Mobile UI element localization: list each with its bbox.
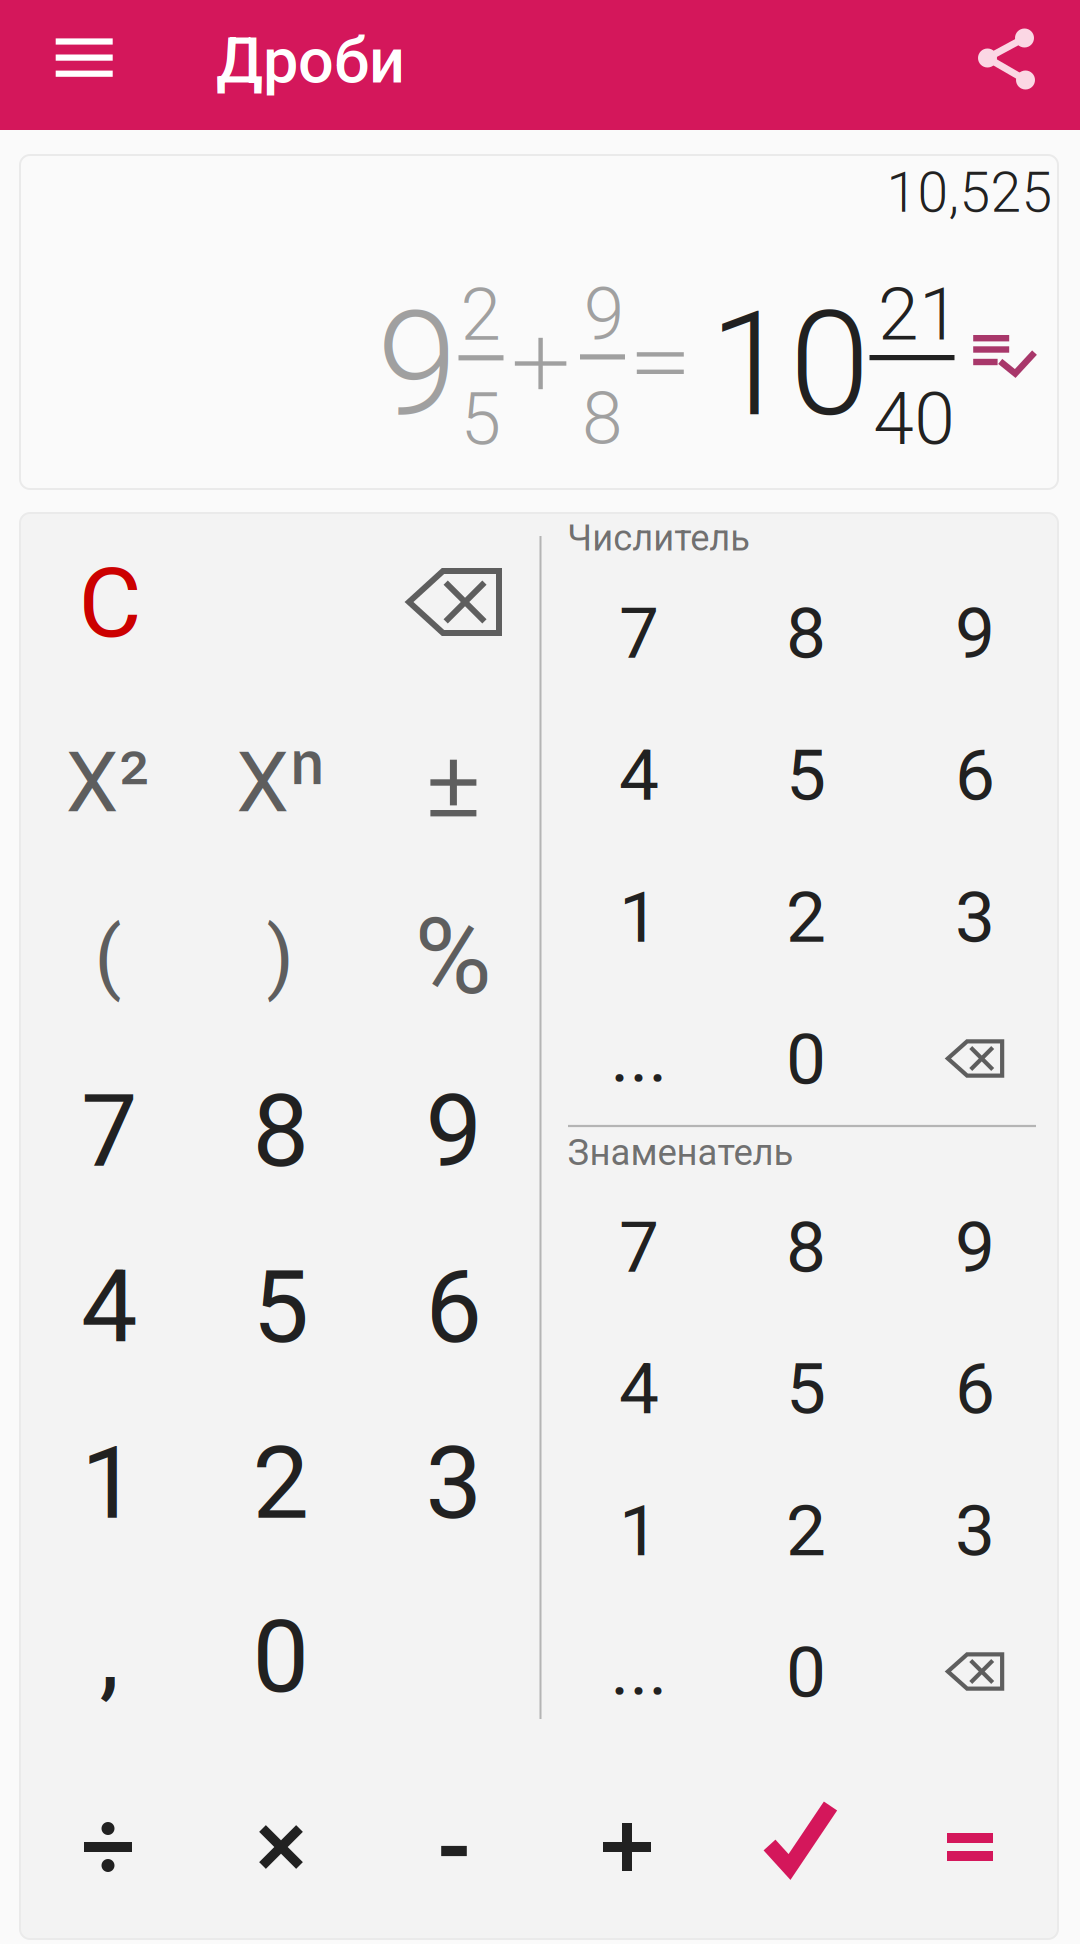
staticText: Дроби bbox=[216, 24, 405, 98]
button[interactable]: 1 bbox=[23, 1395, 196, 1571]
button[interactable]: 7 bbox=[555, 1177, 723, 1318]
staticText: 8 bbox=[786, 1206, 826, 1289]
button[interactable]: Divide bbox=[21, 1749, 194, 1944]
button[interactable]: 4 bbox=[23, 1219, 196, 1395]
staticText: 7 bbox=[619, 592, 659, 675]
button[interactable]: 6 bbox=[891, 1318, 1059, 1459]
button[interactable]: Multiply bbox=[194, 1749, 367, 1944]
button[interactable]: 0 bbox=[722, 989, 890, 1130]
button[interactable]: 4 bbox=[555, 1318, 723, 1459]
button[interactable]: 7 bbox=[23, 1043, 196, 1219]
button[interactable]: 0 bbox=[722, 1602, 890, 1743]
button[interactable]: ( bbox=[21, 869, 194, 1045]
button[interactable]: 8 bbox=[194, 1043, 367, 1219]
button[interactable]: ... bbox=[555, 986, 723, 1127]
staticText: % bbox=[414, 895, 491, 1019]
button[interactable]: ) bbox=[193, 869, 366, 1045]
staticText: 10 bbox=[709, 280, 869, 450]
staticText: 6 bbox=[955, 1347, 995, 1431]
button[interactable]: Share bbox=[954, 0, 1059, 123]
button[interactable]: 6 bbox=[367, 1219, 540, 1395]
staticText: ) bbox=[266, 911, 293, 1003]
staticText: Числитель bbox=[567, 517, 750, 559]
staticText: 0 bbox=[786, 1631, 826, 1714]
button[interactable]: 7 bbox=[555, 563, 723, 704]
button[interactable]: Backspace bbox=[891, 1601, 1059, 1742]
staticText: 6 bbox=[955, 734, 995, 817]
button[interactable]: % bbox=[366, 869, 539, 1045]
button[interactable]: 2 bbox=[722, 847, 890, 988]
button[interactable]: X² bbox=[21, 695, 194, 871]
staticText: 4 bbox=[81, 1248, 138, 1366]
button[interactable]: 1 bbox=[555, 847, 723, 988]
button[interactable]: Xⁿ bbox=[194, 695, 367, 871]
staticText: 8 bbox=[252, 1072, 309, 1190]
button[interactable]: Simplify bbox=[713, 1749, 886, 1944]
button[interactable]: 4 bbox=[555, 705, 723, 846]
button[interactable]: Minus bbox=[367, 1749, 540, 1944]
button[interactable]: 5 bbox=[722, 705, 890, 846]
button[interactable]: 3 bbox=[367, 1395, 540, 1571]
button[interactable]: 5 bbox=[194, 1219, 367, 1395]
button[interactable]: Open navigation menu bbox=[30, 12, 139, 102]
button[interactable]: 9 bbox=[891, 1177, 1059, 1318]
staticText: 1 bbox=[619, 876, 659, 959]
button[interactable]: 8 bbox=[722, 563, 890, 704]
staticText: Знаменатель bbox=[567, 1131, 793, 1174]
button[interactable]: 9 bbox=[367, 1043, 540, 1219]
button[interactable]: Backspace bbox=[367, 514, 540, 690]
staticText: C bbox=[78, 547, 141, 660]
staticText: 8 bbox=[786, 592, 826, 675]
staticText: 7 bbox=[619, 1206, 659, 1289]
button[interactable]: 1 bbox=[555, 1460, 723, 1601]
button[interactable]: 8 bbox=[722, 1177, 890, 1318]
button[interactable]: Backspace bbox=[891, 988, 1059, 1129]
staticText: 9 bbox=[377, 279, 457, 449]
button[interactable]: C bbox=[23, 515, 196, 691]
staticText: ... bbox=[610, 1628, 667, 1712]
button[interactable]: 9 bbox=[891, 563, 1059, 704]
button[interactable]: 2 bbox=[194, 1395, 367, 1571]
staticText: Xⁿ bbox=[236, 733, 325, 832]
staticText: 2 bbox=[786, 876, 826, 959]
staticText: X² bbox=[66, 733, 150, 832]
staticText: 3 bbox=[955, 1489, 995, 1573]
button[interactable]: Plus bbox=[540, 1749, 713, 1944]
button[interactable]: Equals bbox=[883, 1749, 1056, 1944]
staticText: 2 bbox=[786, 1489, 826, 1573]
button[interactable]: 6 bbox=[891, 705, 1059, 846]
button[interactable]: 3 bbox=[891, 1460, 1059, 1601]
staticText: 9 bbox=[584, 271, 625, 357]
staticText: 6 bbox=[425, 1248, 482, 1366]
staticText: 9 bbox=[955, 1206, 995, 1289]
staticText: 4 bbox=[619, 734, 659, 817]
staticText: 5 bbox=[252, 1248, 309, 1366]
staticText: 8 bbox=[582, 376, 623, 461]
staticText: 9 bbox=[425, 1072, 482, 1190]
staticText: 5 bbox=[786, 734, 826, 817]
staticText: 5 bbox=[460, 376, 501, 462]
staticText: 21 bbox=[878, 272, 960, 357]
staticText: 2 bbox=[252, 1424, 309, 1542]
button[interactable]: ... bbox=[555, 1599, 723, 1740]
staticText: 0 bbox=[786, 1018, 826, 1101]
staticText: 40 bbox=[873, 376, 955, 462]
staticText: 1 bbox=[81, 1424, 138, 1542]
staticText: 10,525 bbox=[887, 161, 1053, 225]
staticText: 5 bbox=[786, 1347, 826, 1431]
staticText: 3 bbox=[955, 876, 995, 959]
staticText: 1 bbox=[619, 1489, 659, 1573]
staticText: ( bbox=[94, 911, 121, 1003]
staticText: 0 bbox=[252, 1598, 309, 1716]
staticText: 9 bbox=[955, 592, 995, 675]
staticText: 4 bbox=[619, 1347, 659, 1431]
staticText: , bbox=[99, 1595, 119, 1712]
button[interactable]: , bbox=[23, 1566, 196, 1742]
staticText: ... bbox=[610, 1015, 667, 1099]
staticText: 2 bbox=[460, 272, 501, 358]
button[interactable]: 0 bbox=[194, 1569, 367, 1745]
staticText: 7 bbox=[81, 1072, 138, 1190]
button[interactable]: 3 bbox=[891, 847, 1059, 988]
button[interactable]: 2 bbox=[722, 1460, 890, 1601]
button[interactable]: 5 bbox=[722, 1318, 890, 1459]
